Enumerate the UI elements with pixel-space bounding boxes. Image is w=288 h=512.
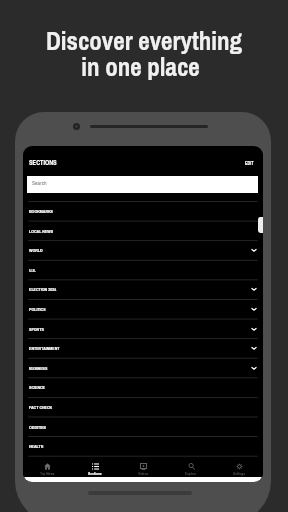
staticText: HEALTH — [29, 443, 44, 449]
button[interactable]: SPORTS — [23, 319, 263, 339]
staticText: U.S. — [29, 267, 37, 273]
button[interactable]: Videos — [119, 458, 167, 476]
staticText: Search — [32, 179, 47, 187]
button[interactable]: Explore — [167, 458, 215, 476]
staticText: FACT CHECK — [29, 404, 53, 410]
staticText: Settings — [233, 471, 246, 476]
staticText: Discover everything — [46, 24, 242, 58]
button[interactable]: ELECTION 2024 — [23, 279, 263, 299]
button[interactable]: BOOKMARKS — [23, 201, 263, 221]
button[interactable]: BUSINESS — [23, 358, 263, 378]
button[interactable]: FACT CHECK — [23, 397, 263, 417]
staticText: SCIENCE — [29, 384, 46, 390]
button[interactable]: WORLD — [23, 240, 263, 260]
button[interactable]: SCIENCE — [23, 377, 263, 397]
staticText: EDIT — [245, 160, 254, 166]
button[interactable]: LOCAL NEWS — [23, 221, 263, 241]
staticText: ENTERTAINMENT — [29, 345, 60, 351]
staticText: ELECTION 2024 — [29, 286, 57, 292]
button[interactable]: U.S. — [23, 260, 263, 280]
staticText: POLITICS — [29, 306, 46, 312]
button[interactable]: Settings — [215, 458, 263, 476]
staticText: WORLD — [29, 247, 43, 253]
button[interactable]: POLITICS — [23, 299, 263, 319]
button[interactable]: Search — [27, 176, 258, 193]
button[interactable]: Open drawer — [258, 217, 263, 233]
staticText: BOOKMARKS — [29, 208, 53, 214]
staticText: Videos — [138, 471, 149, 476]
button[interactable]: HEALTH — [23, 436, 263, 456]
button[interactable]: ENTERTAINMENT — [23, 338, 263, 358]
button[interactable]: EDIT — [242, 156, 257, 168]
button[interactable]: Sections — [71, 458, 119, 476]
staticText: SECTIONS — [29, 158, 57, 167]
staticText: Explore — [185, 471, 197, 476]
staticText: Top News — [40, 471, 55, 476]
staticText: SPORTS — [29, 326, 44, 332]
staticText: LOCAL NEWS — [29, 228, 54, 234]
staticText: Sections — [88, 471, 102, 476]
button[interactable]: ODDITIES — [23, 417, 263, 437]
button[interactable]: Top News — [23, 458, 71, 476]
staticText: in one place — [81, 50, 200, 84]
staticText: ODDITIES — [29, 424, 47, 430]
staticText: BUSINESS — [29, 365, 48, 371]
